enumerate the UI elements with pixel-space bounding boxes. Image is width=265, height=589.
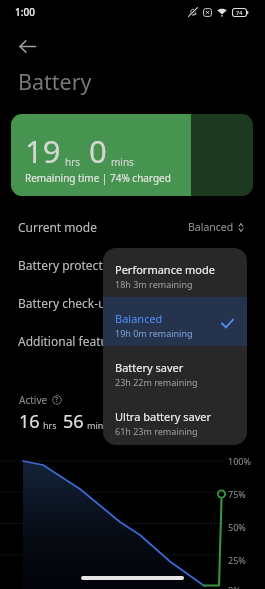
staticText: 25%	[228, 554, 246, 566]
staticText: 74	[236, 9, 243, 16]
button[interactable]: Info about active time	[52, 395, 62, 405]
staticText: Battery protection	[18, 257, 121, 273]
button[interactable]: Back	[7, 26, 47, 66]
staticText: 0	[89, 130, 107, 172]
staticText: Battery saver	[115, 360, 184, 375]
button[interactable]: Battery protection	[0, 250, 265, 280]
button[interactable]: 19	[11, 114, 253, 196]
staticText: Current mode	[18, 219, 97, 235]
staticText: Ultra battery saver	[115, 409, 212, 424]
staticText: Active	[19, 393, 48, 407]
button[interactable]: Battery saver	[103, 346, 247, 395]
staticText: Balanced	[115, 311, 163, 326]
staticText: 18h 3m remaining	[115, 278, 193, 290]
staticText: Battery check-up	[18, 295, 113, 311]
button[interactable]: Current mode	[0, 212, 265, 242]
staticText: hrs	[43, 419, 57, 431]
button[interactable]: Balanced	[103, 297, 247, 346]
staticText: 1:00	[15, 5, 35, 19]
staticText: 23h 22m remaining	[115, 376, 198, 388]
button[interactable]: Ultra battery saver	[103, 395, 247, 444]
staticText: hrs	[65, 155, 81, 169]
staticText: 50%	[228, 521, 246, 533]
staticText: 19	[25, 130, 61, 172]
staticText: 0%	[228, 584, 241, 589]
staticText: Performance mode	[115, 262, 215, 277]
button[interactable]: Additional features	[0, 326, 265, 356]
staticText: mins	[87, 419, 108, 431]
staticText: Battery	[18, 67, 92, 96]
staticText: 16	[19, 409, 40, 434]
staticText: 56	[63, 409, 84, 434]
staticText: Balanced	[188, 220, 234, 234]
staticText: Additional features	[18, 333, 126, 349]
staticText: 75%	[228, 488, 246, 500]
staticText: Remaining time | 74% charged	[25, 171, 171, 185]
staticText: 61h 23m remaining	[115, 425, 198, 437]
staticText: 100%	[228, 455, 251, 467]
staticText: 19h 0m remaining	[115, 327, 193, 339]
button[interactable]: Performance mode	[103, 248, 247, 297]
staticText: ?	[55, 395, 59, 405]
button[interactable]: Battery check-up	[0, 288, 265, 318]
staticText: mins	[111, 155, 134, 169]
